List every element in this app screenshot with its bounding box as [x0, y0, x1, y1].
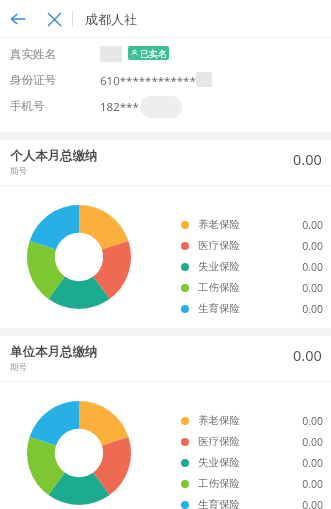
- button[interactable]: Close: [36, 0, 72, 38]
- staticText: 0.00: [241, 239, 323, 253]
- button[interactable]: 生育保险: [181, 298, 323, 319]
- staticText: 真实姓名: [10, 47, 56, 61]
- staticText: 610*************: [100, 73, 203, 89]
- staticText: 0.00: [241, 498, 323, 509]
- staticText: 单位本月总缴纳: [10, 344, 98, 360]
- button[interactable]: 工伤保险: [181, 473, 323, 494]
- staticText: 期号: [10, 166, 27, 177]
- button[interactable]: 医疗保险: [181, 235, 323, 256]
- button[interactable]: 医疗保险: [181, 431, 323, 452]
- staticText: 工伤保险: [198, 281, 240, 294]
- staticText: 0.00: [241, 218, 323, 232]
- button[interactable]: 生育保险: [181, 494, 323, 509]
- staticText: 工伤保险: [198, 477, 240, 490]
- staticText: 身份证号: [10, 73, 56, 87]
- staticText: 养老保险: [198, 414, 240, 427]
- staticText: 0.00: [241, 456, 323, 470]
- staticText: 0.00: [293, 149, 322, 169]
- staticText: 失业保险: [198, 456, 240, 469]
- button[interactable]: 已实名: [128, 46, 169, 60]
- button[interactable]: 单位本月总缴纳: [0, 336, 331, 381]
- staticText: 0.00: [241, 281, 323, 295]
- staticText: 期号: [10, 362, 27, 373]
- staticText: 0.00: [241, 477, 323, 491]
- button[interactable]: 失业保险: [181, 256, 323, 277]
- button[interactable]: 养老保险: [181, 410, 323, 431]
- button[interactable]: 工伤保险: [181, 277, 323, 298]
- staticText: 成都人社: [85, 11, 137, 27]
- staticText: 手机号: [10, 99, 45, 113]
- staticText: 已实名: [140, 48, 167, 59]
- staticText: 182***: [100, 99, 139, 115]
- staticText: 0.00: [241, 435, 323, 449]
- button[interactable]: 个人本月总缴纳: [0, 140, 331, 185]
- staticText: 0.00: [293, 345, 322, 365]
- staticText: 生育保险: [198, 498, 240, 509]
- button[interactable]: Back: [0, 0, 36, 38]
- button[interactable]: 失业保险: [181, 452, 323, 473]
- staticText: 生育保险: [198, 302, 240, 315]
- staticText: 医疗保险: [198, 435, 240, 448]
- staticText: 个人本月总缴纳: [10, 148, 98, 164]
- button[interactable]: 养老保险: [181, 214, 323, 235]
- staticText: 0.00: [241, 414, 323, 428]
- staticText: 养老保险: [198, 218, 240, 231]
- staticText: 医疗保险: [198, 239, 240, 252]
- staticText: 失业保险: [198, 260, 240, 273]
- staticText: 0.00: [241, 302, 323, 316]
- staticText: 0.00: [241, 260, 323, 274]
